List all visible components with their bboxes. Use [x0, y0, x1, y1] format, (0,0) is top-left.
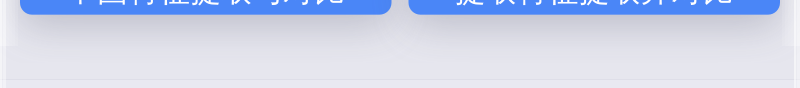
button[interactable]: 中国特征提取与对比	[20, 0, 391, 15]
staticText: 提取特征提取并对比	[455, 0, 734, 10]
button[interactable]: 提取特征提取并对比	[408, 0, 780, 15]
staticText: 中国特征提取与对比	[66, 0, 345, 10]
